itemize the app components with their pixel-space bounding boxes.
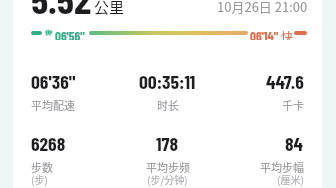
staticText: (步/分钟)	[147, 172, 188, 186]
staticText: 时长	[157, 97, 179, 113]
staticText: 快	[281, 28, 294, 40]
staticText: 178	[156, 131, 179, 154]
staticText: 步数	[31, 159, 53, 175]
staticText: 平均步频	[146, 159, 190, 175]
other: Slow pace	[44, 28, 53, 37]
staticText: (步)	[31, 172, 48, 186]
button[interactable]: 00:35:11	[122, 69, 213, 113]
staticText: 千卡	[282, 97, 304, 113]
button[interactable]: 84	[213, 131, 304, 188]
staticText: 5.52	[31, 0, 92, 22]
staticText: 06'14"	[250, 28, 279, 40]
staticText: 平均配速	[31, 97, 75, 113]
staticText: 10月26日 21:00	[217, 0, 308, 16]
staticText: 00:35:11	[139, 69, 196, 92]
staticText: 06'36"	[31, 69, 76, 92]
button[interactable]: 06'36"	[31, 69, 122, 113]
button[interactable]: 447.6	[213, 69, 304, 113]
button[interactable]: 6268	[31, 131, 122, 188]
staticText: 84	[285, 131, 304, 154]
staticText: 6268	[31, 131, 66, 154]
staticText: (厘米)	[277, 172, 304, 186]
staticText: 447.6	[266, 69, 304, 92]
staticText: 平均步幅	[260, 159, 304, 175]
button[interactable]: 178	[122, 131, 213, 188]
staticText: 公里	[94, 0, 125, 18]
staticText: 06'56"	[55, 28, 85, 40]
